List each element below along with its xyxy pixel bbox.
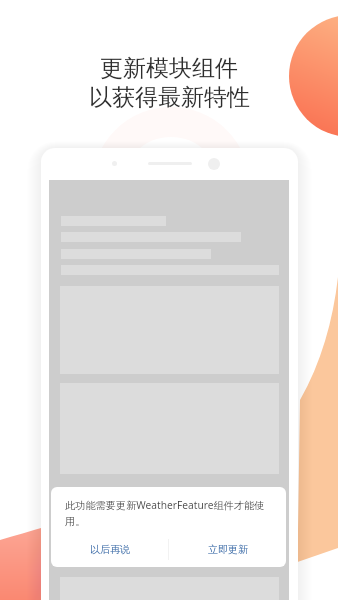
staticText: 以后再说: [90, 543, 130, 556]
staticText: 更新模块组件: [100, 54, 238, 83]
staticText: 以获得最新特性: [89, 83, 250, 112]
staticText: 立即更新: [208, 543, 248, 556]
staticText: 此功能需要更新WeatherFeature组件才能使用。: [65, 498, 272, 528]
button[interactable]: 以后再说: [51, 532, 168, 567]
button[interactable]: 立即更新: [169, 532, 286, 567]
